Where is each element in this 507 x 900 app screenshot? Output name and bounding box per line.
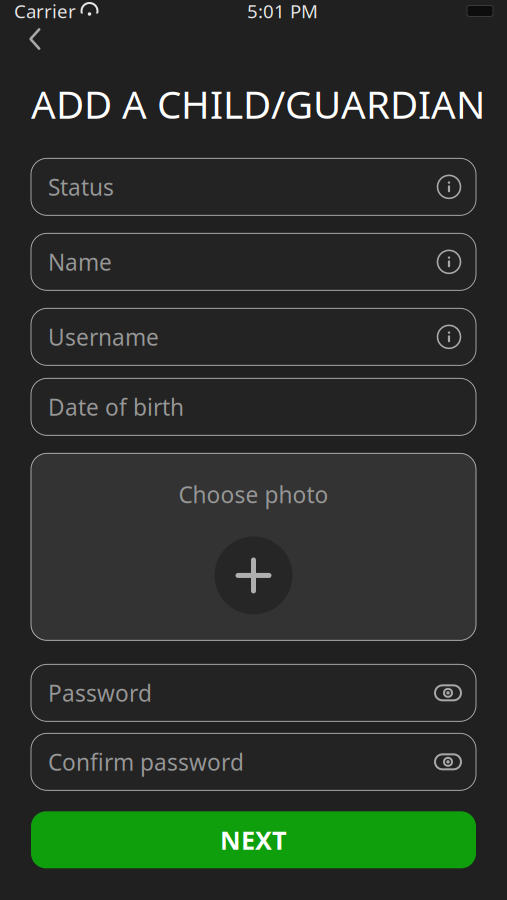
staticText: Name — [48, 247, 112, 277]
staticText: NEXT — [220, 823, 287, 857]
button[interactable]: Status — [31, 158, 476, 215]
staticText: Username — [48, 322, 159, 352]
button[interactable]: Back — [0, 22, 48, 56]
staticText: Date of birth — [48, 392, 184, 422]
staticText: Confirm password — [48, 747, 244, 777]
button[interactable]: Date of birth — [31, 378, 476, 435]
staticText: 5:01 PM — [247, 0, 318, 23]
staticText: Choose photo — [178, 479, 328, 509]
button[interactable]: Username — [31, 308, 476, 365]
button[interactable]: Choose photo — [31, 453, 476, 640]
button[interactable]: Password — [31, 664, 476, 721]
staticText: Carrier — [14, 0, 76, 23]
staticText: ADD A CHILD/GUARDIAN — [31, 78, 485, 129]
staticText: Status — [48, 172, 114, 202]
button[interactable]: Confirm password — [31, 733, 476, 790]
button[interactable]: NEXT — [31, 811, 476, 868]
button[interactable]: Name — [31, 233, 476, 290]
staticText: Password — [48, 678, 152, 708]
